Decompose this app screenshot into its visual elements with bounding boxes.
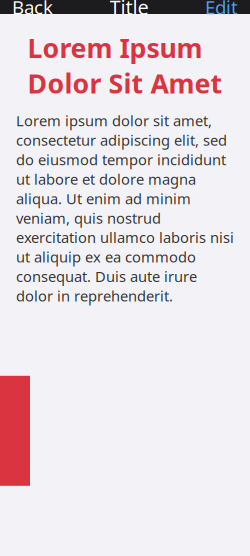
staticText: Lorem ipsum dolor sit amet, consectetur …	[16, 111, 234, 306]
staticText: Edit	[205, 0, 238, 19]
staticText: Back	[12, 0, 53, 19]
staticText: Title	[109, 0, 148, 20]
staticText: Lorem Ipsum Dolor Sit Amet	[27, 30, 222, 101]
